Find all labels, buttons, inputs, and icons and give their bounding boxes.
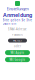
staticText: E-Mail-Adresse: [8, 27, 27, 31]
staticText: Passwort: [12, 33, 23, 36]
button[interactable]: Mit Apple: [5, 50, 30, 55]
staticText: oder: [14, 45, 21, 48]
staticText: Weiter: [13, 39, 22, 42]
button[interactable]: Mit Google: [5, 57, 30, 62]
staticText: Einstellungen: [6, 6, 28, 11]
staticText: Anmeldung: [3, 11, 32, 18]
staticText: Mit Apple: [10, 51, 24, 54]
staticText: Mit Google: [9, 58, 25, 61]
staticText: Bitte geben Sie Ihre Daten ein: [2, 18, 32, 25]
button[interactable]: Weiter: [8, 39, 27, 43]
